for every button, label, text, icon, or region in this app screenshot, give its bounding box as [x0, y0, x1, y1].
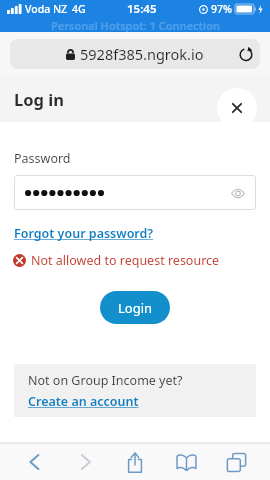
staticText: 15:45 [127, 1, 157, 17]
button[interactable]: Bookmarks [166, 444, 206, 480]
staticText: Password [14, 150, 71, 167]
staticText: Forgot your password? [14, 225, 154, 242]
staticText: Not on Group Income yet? [28, 372, 183, 389]
staticText: Not allowed to request resource [31, 252, 220, 269]
staticText: 97% [211, 2, 232, 16]
button[interactable]: Show password [14, 175, 256, 210]
button[interactable]: Close [217, 88, 257, 128]
button[interactable]: Forgot your password? [14, 225, 154, 242]
button[interactable]: Forward [65, 444, 105, 480]
button[interactable]: Show password [228, 183, 248, 203]
button[interactable]: Share [115, 444, 155, 480]
button[interactable]: Address bar [10, 39, 260, 69]
button[interactable]: Back [14, 444, 54, 480]
button[interactable]: Tabs [216, 444, 256, 480]
staticText: Log in [14, 88, 64, 110]
staticText: Voda NZ [25, 2, 68, 16]
button[interactable]: Create an account [28, 393, 139, 410]
staticText: 4G [72, 2, 86, 16]
staticText: 5928f385.ngrok.io [80, 44, 204, 64]
button[interactable]: Reload [232, 40, 260, 68]
button[interactable]: Login [100, 291, 170, 324]
staticText: Personal Hotspot: 1 Connection [51, 18, 220, 32]
staticText: Login [118, 299, 153, 317]
staticText: Create an account [28, 393, 139, 410]
